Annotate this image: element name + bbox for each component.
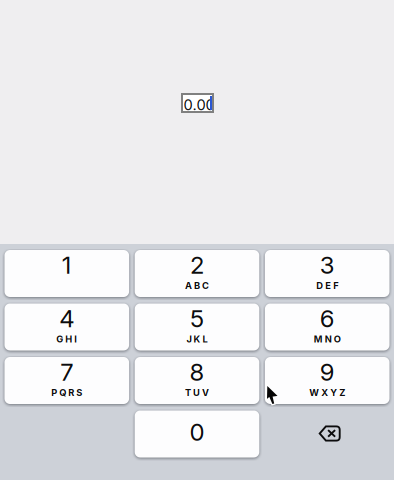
staticText: 9 <box>320 357 335 386</box>
staticText: J K L <box>186 333 207 345</box>
button[interactable]: 5 <box>135 303 259 350</box>
staticText: 6 <box>320 304 335 333</box>
staticText: 3 <box>320 250 335 279</box>
staticText: 4 <box>59 304 74 333</box>
staticText: A B C <box>185 280 209 291</box>
button[interactable]: 3 <box>265 250 389 297</box>
staticText: T U V <box>185 387 209 398</box>
staticText: D E F <box>316 280 338 291</box>
staticText: 8 <box>189 357 204 386</box>
button[interactable]: 9 <box>265 357 389 404</box>
button[interactable]: 6 <box>265 303 389 350</box>
staticText: G H I <box>56 333 77 345</box>
staticText: 0 <box>189 417 204 446</box>
staticText: P Q R S <box>51 387 82 398</box>
staticText: 5 <box>190 304 204 333</box>
staticText: W X Y Z <box>309 387 345 398</box>
button[interactable]: 8 <box>135 357 259 404</box>
button[interactable]: 0 <box>135 410 259 457</box>
button[interactable]: 7 <box>4 357 129 404</box>
button[interactable]: Delete <box>265 410 389 457</box>
staticText: 7 <box>60 357 73 386</box>
button[interactable]: 2 <box>135 250 259 297</box>
staticText: 0.00 <box>183 96 214 114</box>
staticText: 1 <box>62 250 72 279</box>
staticText: M N O <box>314 333 341 345</box>
staticText: 2 <box>190 250 204 279</box>
button[interactable]: 4 <box>4 303 129 350</box>
button[interactable]: 1 <box>4 250 129 297</box>
